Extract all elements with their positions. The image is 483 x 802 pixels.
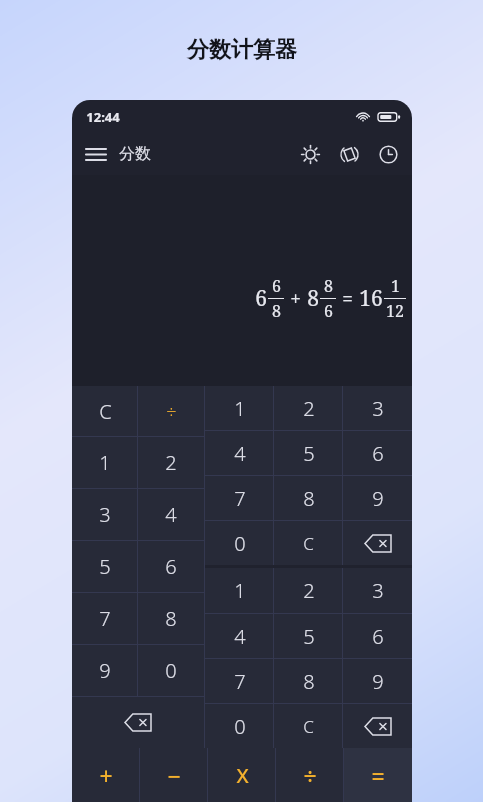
button[interactable]: =: [344, 748, 412, 802]
button[interactable]: 7: [205, 476, 274, 520]
button[interactable]: C: [274, 521, 343, 565]
staticText: 8: [303, 485, 315, 512]
staticText: 5: [303, 440, 315, 467]
button[interactable]: 2: [274, 386, 343, 430]
button[interactable]: Rotate screen: [332, 137, 366, 171]
button[interactable]: 1: [205, 568, 274, 613]
button[interactable]: 7: [72, 593, 138, 644]
button[interactable]: 3: [72, 489, 138, 540]
staticText: 6: [372, 623, 384, 650]
staticText: 5: [99, 553, 111, 580]
staticText: 7: [99, 605, 111, 632]
staticText: ÷: [303, 760, 317, 791]
staticText: C: [303, 715, 314, 738]
button[interactable]: Backspace: [343, 704, 412, 748]
button[interactable]: 1: [205, 386, 274, 430]
button[interactable]: 0: [138, 645, 204, 696]
staticText: 3: [99, 501, 111, 528]
button[interactable]: 5: [274, 614, 343, 658]
button[interactable]: 2: [274, 568, 343, 613]
staticText: =: [342, 286, 353, 312]
staticText: 分数计算器: [187, 36, 297, 64]
button[interactable]: −: [140, 748, 208, 802]
button[interactable]: +: [72, 748, 140, 802]
staticText: 9: [372, 485, 384, 512]
staticText: C: [99, 398, 112, 425]
staticText: =: [371, 760, 385, 791]
staticText: 0: [165, 657, 177, 684]
staticText: 4: [234, 440, 246, 467]
staticText: 0: [234, 530, 246, 557]
button[interactable]: 0: [205, 704, 274, 748]
staticText: 分数: [119, 144, 151, 164]
staticText: 9: [372, 668, 384, 695]
staticText: 8: [324, 275, 333, 297]
staticText: 2: [165, 449, 177, 476]
button[interactable]: 8: [138, 593, 204, 644]
staticText: 2: [303, 395, 315, 422]
button[interactable]: 7: [205, 659, 274, 703]
button[interactable]: 3: [343, 386, 412, 430]
staticText: 12:44: [86, 108, 120, 126]
button[interactable]: Brightness: [293, 137, 327, 171]
button[interactable]: 3: [343, 568, 412, 613]
staticText: 8: [303, 668, 315, 695]
button[interactable]: 0: [205, 521, 274, 565]
staticText: 12: [386, 300, 404, 322]
button[interactable]: 8: [274, 659, 343, 703]
staticText: 1: [234, 395, 246, 422]
button[interactable]: 9: [72, 645, 138, 696]
staticText: 6: [272, 275, 281, 297]
button[interactable]: Backspace: [343, 521, 412, 565]
staticText: 9: [99, 657, 111, 684]
button[interactable]: 4: [205, 614, 274, 658]
staticText: 5: [303, 623, 315, 650]
button[interactable]: 1: [72, 437, 138, 488]
button[interactable]: 5: [274, 431, 343, 475]
button[interactable]: 6: [343, 431, 412, 475]
staticText: C: [303, 532, 314, 555]
staticText: 6: [372, 440, 384, 467]
staticText: 1: [234, 577, 246, 604]
staticText: 8: [307, 284, 319, 313]
button[interactable]: 4: [205, 431, 274, 475]
button[interactable]: X: [208, 748, 276, 802]
staticText: 16: [359, 284, 383, 313]
staticText: 3: [372, 395, 384, 422]
button[interactable]: C: [274, 704, 343, 748]
staticText: 7: [234, 668, 246, 695]
button[interactable]: 6: [138, 541, 204, 592]
staticText: 6: [324, 300, 333, 322]
staticText: +: [99, 760, 113, 791]
staticText: 6: [165, 553, 177, 580]
button[interactable]: 4: [138, 489, 204, 540]
staticText: 1: [391, 275, 400, 297]
staticText: 1: [99, 449, 111, 476]
button[interactable]: 6: [343, 614, 412, 658]
button[interactable]: Menu: [79, 137, 113, 171]
button[interactable]: Backspace: [72, 697, 204, 748]
staticText: 8: [165, 605, 177, 632]
button[interactable]: C: [72, 386, 138, 436]
staticText: 0: [234, 713, 246, 740]
staticText: 6: [255, 284, 267, 313]
button[interactable]: ÷: [138, 386, 204, 436]
staticText: 2: [303, 577, 315, 604]
button[interactable]: ÷: [276, 748, 344, 802]
button[interactable]: 9: [343, 659, 412, 703]
staticText: −: [167, 760, 181, 791]
staticText: ÷: [166, 399, 177, 424]
button[interactable]: 9: [343, 476, 412, 520]
button[interactable]: 5: [72, 541, 138, 592]
button[interactable]: 8: [274, 476, 343, 520]
staticText: +: [290, 286, 301, 312]
button[interactable]: 2: [138, 437, 204, 488]
staticText: 4: [234, 623, 246, 650]
staticText: 8: [272, 300, 281, 322]
button[interactable]: History: [371, 137, 405, 171]
staticText: 7: [234, 485, 246, 512]
staticText: 3: [372, 577, 384, 604]
staticText: X: [236, 762, 249, 789]
staticText: 4: [165, 501, 177, 528]
